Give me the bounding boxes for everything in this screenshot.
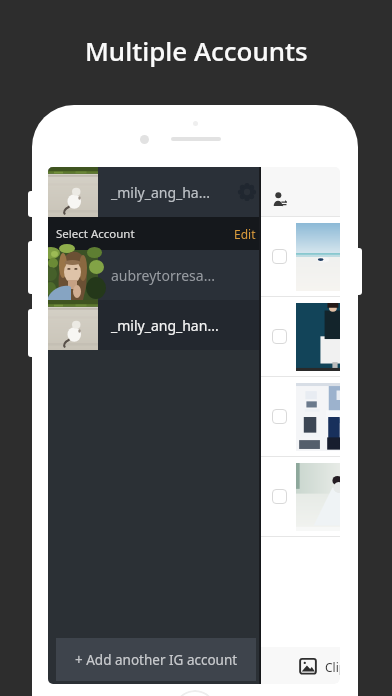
button[interactable]: aubreytorresa... [48,250,261,300]
button[interactable] [48,297,340,376]
staticText: _mily_ang_han... [111,316,219,335]
staticText: + Add another IG account [75,651,238,669]
button[interactable] [48,377,340,456]
button[interactable]: Clip [48,647,340,684]
staticText: Multiple Accounts [85,33,308,68]
button[interactable]: _mily_ang_han... [48,300,261,350]
button[interactable]: + Add another IG account [56,638,256,681]
staticText: Edit [234,226,256,242]
button[interactable]: Settings [238,183,256,201]
button[interactable] [48,217,340,296]
button[interactable] [48,457,340,536]
staticText: _mily_ang_ha... [111,183,210,202]
staticText: Clip [325,659,340,675]
button[interactable]: Switch account [48,167,340,216]
button[interactable]: _mily_ang_ha... [48,167,261,217]
button[interactable]: Select Account [48,217,261,250]
staticText: Select Account [56,226,135,242]
button[interactable]: Switch account [273,192,287,206]
staticText: aubreytorresa... [111,266,215,285]
